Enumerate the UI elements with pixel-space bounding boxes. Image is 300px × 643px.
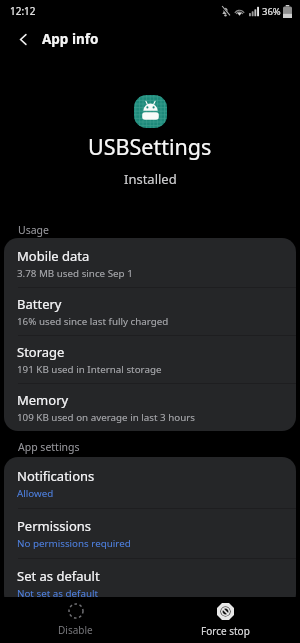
- button[interactable]: Disable: [0, 597, 150, 643]
- staticText: 3.78 MB used since Sep 1: [17, 267, 133, 280]
- button[interactable]: Force stop: [150, 597, 300, 643]
- staticText: 12:12: [10, 4, 36, 18]
- staticText: Set as default: [17, 567, 100, 585]
- button[interactable]: Notifications: [4, 459, 296, 508]
- staticText: Notifications: [17, 467, 95, 485]
- button[interactable]: Memory: [4, 384, 296, 431]
- staticText: App info: [42, 30, 99, 48]
- button[interactable]: Mobile data: [4, 240, 296, 287]
- staticText: Battery: [17, 295, 62, 313]
- staticText: Force stop: [201, 624, 250, 638]
- staticText: 191 KB used in Internal storage: [17, 363, 162, 376]
- button[interactable]: Set as default: [4, 559, 296, 608]
- staticText: Usage: [18, 223, 49, 237]
- staticText: Mobile data: [17, 247, 90, 265]
- staticText: Allowed: [17, 487, 54, 500]
- staticText: 109 KB used on average in last 3 hours: [17, 411, 196, 424]
- button[interactable]: Storage: [4, 336, 296, 383]
- button[interactable]: [18, 34, 29, 45]
- staticText: Storage: [17, 343, 65, 361]
- staticText: No permissions required: [17, 537, 131, 550]
- button[interactable]: Permissions: [4, 509, 296, 558]
- staticText: Permissions: [17, 517, 92, 535]
- staticText: App settings: [18, 440, 80, 454]
- staticText: Memory: [17, 391, 69, 409]
- staticText: 36%: [262, 5, 281, 18]
- button[interactable]: Battery: [4, 288, 296, 335]
- staticText: Disable: [58, 623, 93, 637]
- staticText: 16% used since last fully charged: [17, 315, 169, 328]
- staticText: USBSettings: [88, 132, 212, 161]
- staticText: Installed: [124, 170, 177, 188]
- staticText: Not set as default: [17, 587, 99, 600]
